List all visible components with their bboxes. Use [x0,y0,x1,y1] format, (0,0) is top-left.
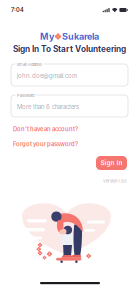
staticText: Email Address [17,62,42,67]
staticText: Version 1.0.0 [103,179,127,183]
staticText: john.doe@gmail.com [17,72,77,79]
staticText: Forgot your password? [13,140,78,148]
button[interactable]: Don't have an account? [13,125,130,133]
staticText: Sukarela [62,31,99,42]
button[interactable]: Sign In [96,156,127,170]
button[interactable]: Forgot your password? [13,140,130,148]
staticText: Sign In To Start Volunteering [13,44,126,54]
staticText: 7:04 [11,7,24,13]
staticText: Password [17,93,34,98]
staticText: More than 6 characters [17,103,79,110]
staticText: Don't have an account? [13,125,78,133]
staticText: Sign In [100,159,122,167]
staticText: My [40,31,54,42]
